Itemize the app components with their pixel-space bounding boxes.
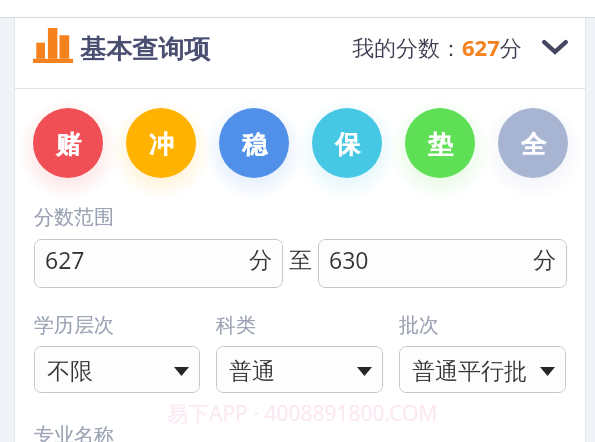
staticText: 627 bbox=[45, 244, 85, 275]
button[interactable]: 普通 bbox=[216, 346, 383, 393]
button[interactable]: 冲 bbox=[126, 108, 196, 178]
staticText: 冲 bbox=[149, 129, 174, 160]
staticText: 分 bbox=[533, 246, 556, 275]
staticText: 易下APP · 4008891800.COM bbox=[167, 399, 438, 428]
button[interactable]: 普通平行批 bbox=[399, 346, 566, 393]
staticText: 不限 bbox=[47, 357, 93, 386]
staticText: 保 bbox=[335, 129, 360, 160]
button[interactable]: 垫 bbox=[405, 108, 475, 178]
button[interactable]: 赌 bbox=[33, 108, 103, 178]
button[interactable]: 稳 bbox=[219, 108, 289, 178]
staticText: 学历层次 bbox=[34, 313, 114, 338]
staticText: 630 bbox=[329, 244, 369, 275]
staticText: 基本查询项 bbox=[80, 33, 210, 66]
staticText: 普通平行批 bbox=[412, 357, 527, 386]
staticText: 稳 bbox=[242, 129, 267, 160]
staticText: 专业名称 bbox=[34, 423, 114, 442]
staticText: 至 bbox=[289, 246, 312, 275]
staticText: 赌 bbox=[56, 129, 81, 160]
staticText: 我的分数：627分 bbox=[352, 32, 522, 62]
button[interactable]: 基本查询项 bbox=[15, 18, 585, 88]
button[interactable]: 不限 bbox=[34, 346, 200, 393]
button[interactable]: 全 bbox=[498, 108, 568, 178]
button[interactable]: 展开 bbox=[540, 35, 570, 59]
button[interactable]: 627 bbox=[34, 239, 283, 288]
staticText: 科类 bbox=[216, 313, 256, 338]
staticText: 批次 bbox=[399, 313, 439, 338]
staticText: 分数范围 bbox=[34, 205, 114, 230]
staticText: 全 bbox=[521, 129, 546, 160]
button[interactable]: 630 bbox=[318, 239, 567, 288]
staticText: 分 bbox=[249, 246, 272, 275]
staticText: 垫 bbox=[428, 129, 453, 160]
staticText: 普通 bbox=[229, 357, 275, 386]
button[interactable]: 保 bbox=[312, 108, 382, 178]
